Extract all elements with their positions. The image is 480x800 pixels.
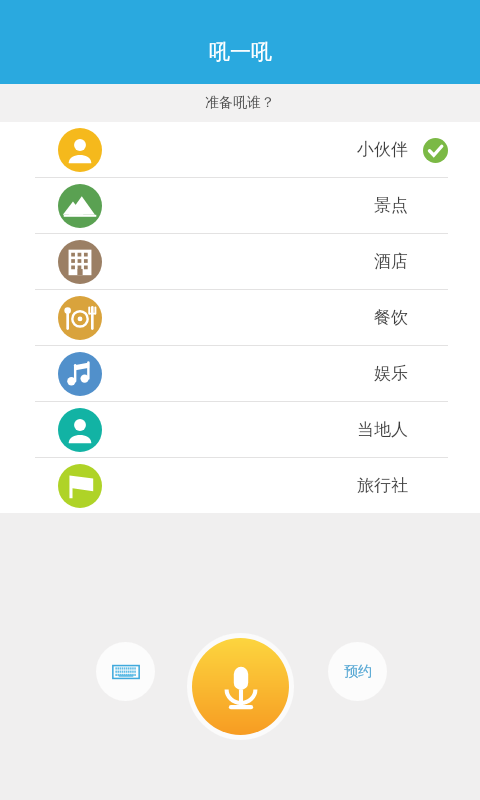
staticText: 娱乐 (374, 363, 408, 384)
button[interactable]: 预约 (328, 642, 387, 701)
staticText: 当地人 (357, 419, 408, 440)
button[interactable]: Start voice shout (187, 633, 294, 740)
staticText: 预约 (344, 663, 372, 681)
button[interactable]: Keyboard input (96, 642, 155, 701)
button[interactable]: 景点 (0, 178, 480, 233)
staticText: 旅行社 (357, 475, 408, 496)
button[interactable]: 旅行社 (0, 458, 480, 513)
button[interactable]: 酒店 (0, 234, 480, 289)
button[interactable]: 餐饮 (0, 290, 480, 345)
staticText: 小伙伴 (357, 139, 408, 160)
button[interactable]: 娱乐 (0, 346, 480, 401)
staticText: 吼一吼 (209, 39, 272, 65)
button[interactable]: 当地人 (0, 402, 480, 457)
staticText: 酒店 (374, 251, 408, 272)
button[interactable]: 小伙伴 (0, 122, 480, 177)
staticText: 餐饮 (374, 307, 408, 328)
staticText: 准备吼谁？ (205, 94, 275, 112)
staticText: 景点 (374, 195, 408, 216)
